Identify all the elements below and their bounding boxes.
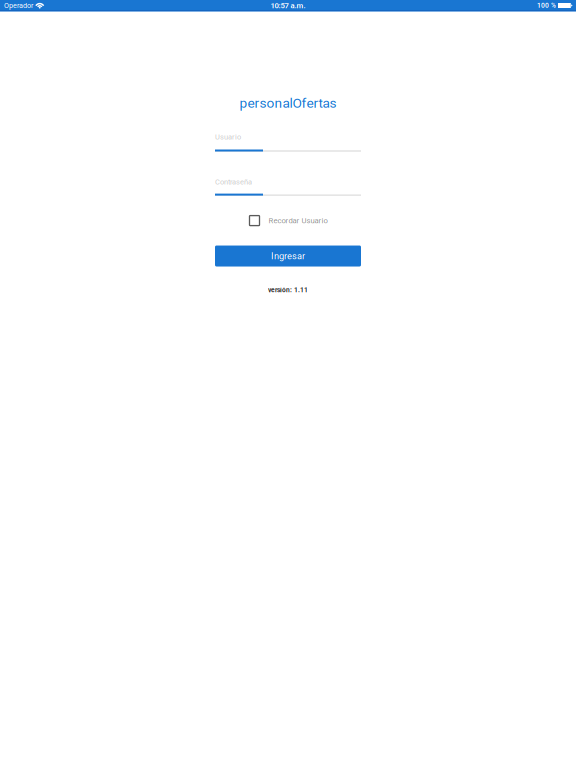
- staticText: Usuario: [215, 133, 241, 141]
- button[interactable]: Ingresar: [215, 245, 361, 266]
- staticText: 100 %: [537, 2, 556, 9]
- staticText: Ingresar: [271, 251, 305, 261]
- staticText: personalOfertas: [239, 95, 336, 111]
- staticText: Recordar Usuario: [268, 216, 327, 225]
- staticText: Contraseña: [215, 178, 252, 186]
- button[interactable]: Recordar Usuario: [249, 215, 361, 227]
- button[interactable]: Contraseña: [215, 177, 361, 196]
- staticText: Operador: [4, 1, 33, 10]
- staticText: 10:57 a.m.: [270, 1, 305, 10]
- button[interactable]: Usuario: [215, 132, 361, 151]
- staticText: versión: 1.11: [268, 286, 308, 294]
